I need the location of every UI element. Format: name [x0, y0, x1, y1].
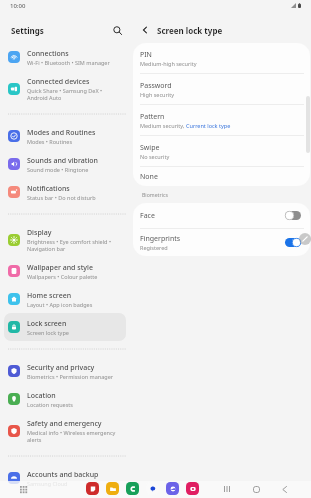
button[interactable]: Password: [133, 74, 310, 104]
staticText: Notifications: [27, 184, 70, 194]
staticText: Password: [140, 81, 172, 91]
staticText: Location requests: [27, 401, 73, 408]
staticText: Screen lock type: [27, 329, 69, 336]
staticText: Registered: [140, 244, 168, 251]
button[interactable]: Lock screen: [4, 313, 126, 341]
staticText: Layout • App icon badges: [27, 301, 93, 308]
staticText: Navigation bar: [27, 245, 66, 252]
staticText: Samsung Cloud: [27, 480, 68, 487]
staticText: PIN: [140, 50, 152, 60]
button[interactable]: Notes: [86, 482, 99, 495]
staticText: Safety and emergency: [27, 419, 102, 429]
staticText: Fingerprints: [140, 234, 181, 244]
staticText: None: [140, 172, 158, 182]
staticText: Lock screen: [27, 319, 67, 329]
staticText: Wallpaper and style: [27, 263, 93, 273]
staticText: Pattern: [140, 112, 165, 122]
staticText: Display: [27, 228, 52, 238]
staticText: Swipe: [140, 143, 160, 153]
button[interactable]: My Files: [106, 482, 119, 495]
button[interactable]: Accounts and backup: [4, 464, 126, 492]
staticText: Connections: [27, 49, 69, 59]
staticText: Screen lock type: [157, 25, 223, 36]
button[interactable]: Search: [109, 22, 125, 38]
button[interactable]: Face: [133, 203, 310, 228]
staticText: Location: [27, 391, 56, 401]
staticText: Medical info • Wireless emergency: [27, 429, 116, 436]
button[interactable]: Gallery: [186, 482, 199, 495]
button[interactable]: Display: [4, 222, 126, 257]
button[interactable]: Swipe: [133, 136, 310, 166]
staticText: Medium security,: [140, 122, 186, 129]
staticText: Home screen: [27, 291, 72, 301]
button[interactable]: Home screen: [4, 285, 126, 313]
staticText: Connected devices: [27, 77, 90, 87]
button[interactable]: Sounds and vibration: [4, 150, 126, 178]
button[interactable]: None: [133, 167, 310, 186]
button[interactable]: Home: [250, 483, 262, 495]
staticText: Quick Share • Samsung DeX •: [27, 87, 103, 94]
staticText: Accounts and backup: [27, 470, 99, 480]
staticText: Face: [140, 211, 155, 221]
staticText: Medium-high security: [140, 60, 197, 67]
staticText: Modes • Routines: [27, 138, 73, 145]
button[interactable]: Recent apps: [221, 483, 233, 495]
button[interactable]: Modes and Routines: [4, 122, 126, 150]
staticText: Biometrics • Permission manager: [27, 373, 114, 380]
button[interactable]: Connected devices: [4, 71, 126, 106]
button[interactable]: Messages: [146, 482, 159, 495]
staticText: Brightness • Eye comfort shield •: [27, 238, 111, 245]
staticText: Current lock type: [186, 122, 231, 129]
staticText: Modes and Routines: [27, 128, 96, 138]
button[interactable]: Connections: [4, 43, 126, 71]
button[interactable]: All apps: [17, 483, 29, 495]
staticText: Biometrics: [142, 191, 168, 198]
button[interactable]: Security and privacy: [4, 357, 126, 385]
staticText: Security and privacy: [27, 363, 95, 373]
button[interactable]: Back: [278, 483, 290, 495]
staticText: No security: [140, 153, 170, 160]
button[interactable]: Notifications: [4, 178, 126, 206]
button[interactable]: Internet: [166, 482, 179, 495]
button[interactable]: Safety and emergency: [4, 413, 126, 448]
staticText: Settings: [11, 25, 44, 36]
staticText: alerts: [27, 436, 42, 443]
button[interactable]: Wallpaper and style: [4, 257, 126, 285]
staticText: Sound mode • Ringtone: [27, 166, 89, 173]
staticText: Wi-Fi • Bluetooth • SIM manager: [27, 59, 110, 66]
staticText: Android Auto: [27, 94, 62, 101]
staticText: Wallpapers • Colour palette: [27, 273, 98, 280]
staticText: Sounds and vibration: [27, 156, 99, 166]
button[interactable]: Phone: [126, 482, 139, 495]
button[interactable]: PIN: [133, 43, 310, 73]
button[interactable]: Location: [4, 385, 126, 413]
button[interactable]: Pattern: [133, 105, 310, 135]
staticText: High security: [140, 91, 174, 98]
staticText: Status bar • Do not disturb: [27, 194, 96, 201]
staticText: 10:00: [10, 2, 26, 10]
button[interactable]: Fingerprints: [133, 229, 310, 256]
button[interactable]: Back: [138, 23, 152, 37]
